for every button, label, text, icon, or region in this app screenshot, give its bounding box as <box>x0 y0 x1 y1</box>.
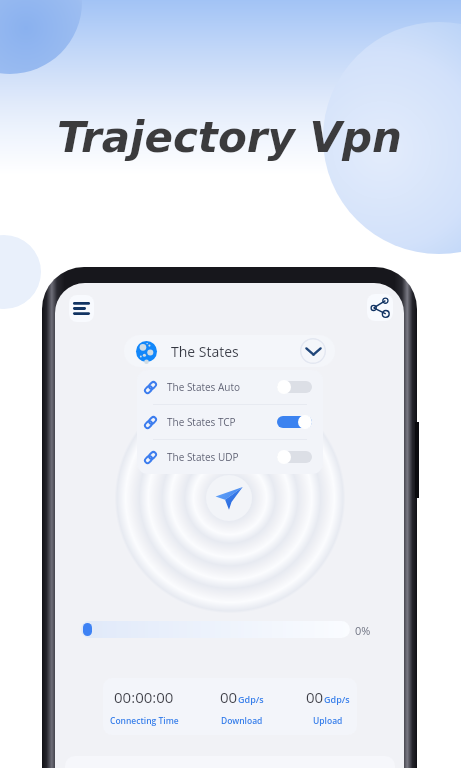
button[interactable]: The States <box>124 335 335 367</box>
button[interactable]: Toggle <box>277 450 312 464</box>
staticText: The States <box>171 342 239 361</box>
staticText: Gdp/s <box>238 693 264 705</box>
staticText: The States Auto <box>167 380 241 394</box>
staticText: 00:00:00 <box>114 687 174 707</box>
staticText: Upload <box>313 715 343 727</box>
staticText: The States TCP <box>167 415 236 429</box>
button[interactable]: Progress <box>81 621 350 638</box>
button[interactable]: The States UDP <box>137 440 323 474</box>
button[interactable]: 00 <box>287 687 357 727</box>
button[interactable]: Menu <box>69 295 94 322</box>
staticText: 00 <box>306 687 324 707</box>
button[interactable]: 00:00:00 <box>103 687 185 727</box>
staticText: The States UDP <box>167 450 239 464</box>
button[interactable]: Toggle <box>277 380 312 394</box>
button[interactable]: Connect <box>206 475 252 521</box>
staticText: Trajectory Vpn <box>57 113 402 162</box>
staticText: 0% <box>355 623 371 638</box>
button[interactable]: The States Auto <box>137 370 323 404</box>
button[interactable]: Share <box>367 294 393 321</box>
staticText: Download <box>221 715 263 727</box>
button[interactable]: Toggle <box>277 415 312 429</box>
staticText: Gdp/s <box>324 693 350 705</box>
staticText: 00 <box>220 687 238 707</box>
staticText: Connecting Time <box>110 715 179 727</box>
button[interactable]: The States TCP <box>137 405 323 439</box>
button[interactable]: 00 <box>201 687 283 727</box>
